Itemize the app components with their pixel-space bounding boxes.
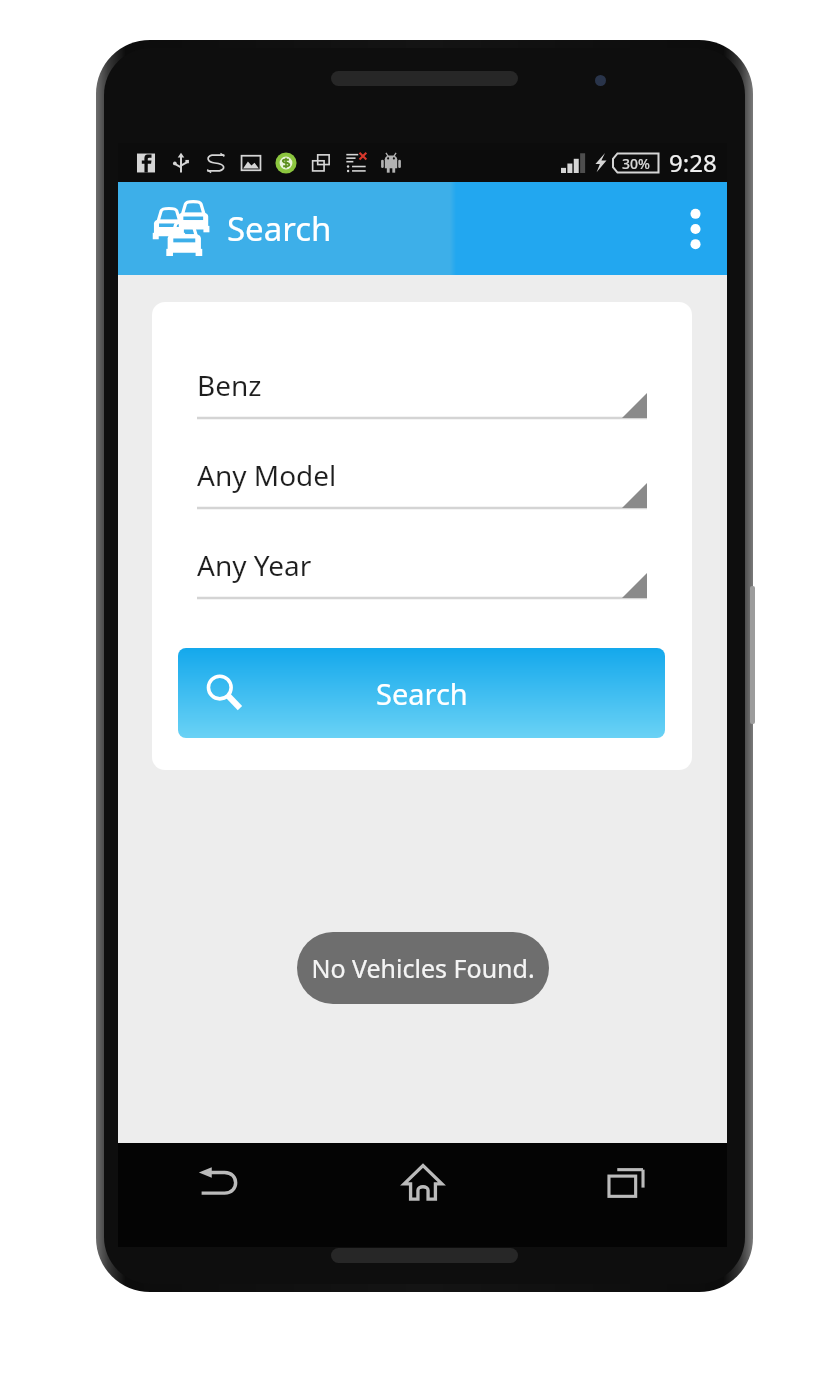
button[interactable]: Recent apps <box>524 1143 727 1247</box>
staticText: Any Model <box>197 456 337 494</box>
button[interactable]: Home <box>321 1143 524 1247</box>
button[interactable]: Back <box>118 1143 321 1247</box>
button[interactable]: Search <box>178 648 665 738</box>
staticText: Search <box>376 674 468 713</box>
staticText: Search <box>227 206 332 251</box>
staticText: 30% <box>622 154 650 173</box>
staticText: Any Year <box>197 546 312 584</box>
button[interactable]: More options <box>663 182 727 275</box>
button[interactable]: Any Year <box>197 544 647 604</box>
staticText: Benz <box>197 366 262 404</box>
button[interactable]: Any Model <box>197 454 647 514</box>
staticText: 9:28 <box>669 146 717 179</box>
button[interactable]: Benz <box>197 364 647 424</box>
staticText: No Vehicles Found. <box>311 951 535 985</box>
